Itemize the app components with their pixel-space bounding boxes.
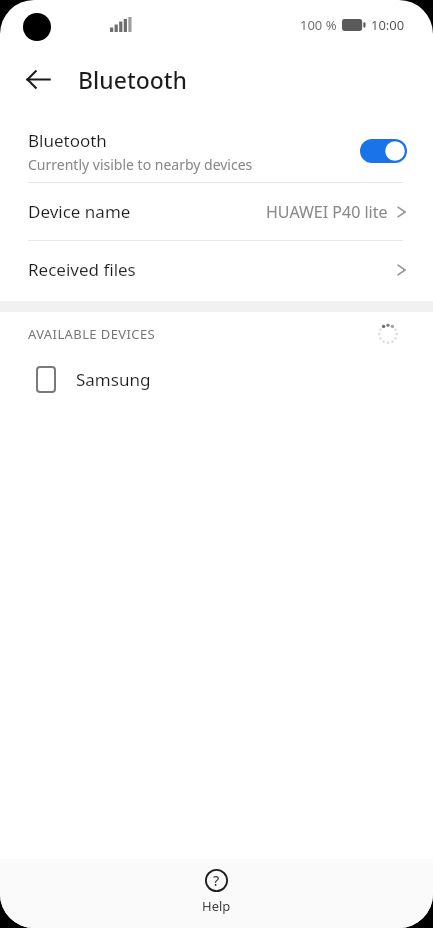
button[interactable]: Samsung — [0, 356, 433, 402]
staticText: 10:00 — [371, 16, 405, 34]
button[interactable]: Bluetooth toggle — [360, 139, 407, 163]
button[interactable]: Bluetooth — [0, 120, 433, 182]
other: Help — [205, 869, 228, 892]
staticText: 100 % — [300, 16, 337, 34]
staticText: Currently visible to nearby devices — [28, 155, 253, 174]
staticText: ? — [213, 871, 220, 890]
button[interactable]: Received files — [0, 241, 433, 298]
staticText: HUAWEI P40 lite — [266, 201, 388, 223]
button[interactable]: Device name — [0, 183, 433, 240]
button[interactable]: Help — [182, 866, 251, 918]
staticText: AVAILABLE DEVICES — [28, 325, 156, 343]
staticText: Bluetooth — [28, 129, 107, 152]
staticText: Samsung — [76, 368, 151, 391]
staticText: Help — [202, 897, 231, 915]
staticText: Bluetooth — [78, 64, 188, 95]
button[interactable]: Back — [14, 55, 62, 103]
staticText: Device name — [28, 200, 266, 223]
staticText: Received files — [28, 258, 396, 281]
